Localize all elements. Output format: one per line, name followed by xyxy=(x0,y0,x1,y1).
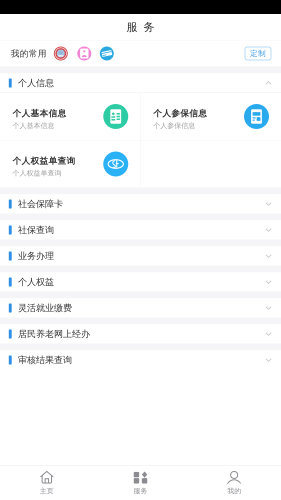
button[interactable]: 审核结果查询 xyxy=(0,350,281,369)
staticText: 我的常用 xyxy=(11,48,47,59)
staticText: 服务 xyxy=(133,487,147,495)
button[interactable]: 个人参保信息 xyxy=(68,46,91,60)
button[interactable]: 主页 xyxy=(0,466,94,500)
staticText: 个人参保信息 xyxy=(153,108,207,119)
button[interactable]: 个人权益单查询 xyxy=(0,140,140,187)
staticText: 社会保障卡 xyxy=(18,198,63,210)
button[interactable]: 社会保障卡 xyxy=(91,46,114,60)
staticText: 社保查询 xyxy=(18,224,54,236)
button[interactable]: 社保查询 xyxy=(0,220,281,239)
button[interactable]: 社会保障卡 xyxy=(0,194,281,213)
staticText: 个人基本信息 xyxy=(12,108,66,119)
button[interactable]: 定制 xyxy=(245,47,271,60)
staticText: 审核结果查询 xyxy=(18,354,72,366)
staticText: 定制 xyxy=(250,49,266,58)
button[interactable]: 个人信息 xyxy=(0,73,281,92)
staticText: 居民养老网上经办 xyxy=(18,328,90,340)
button[interactable]: 个人基本信息 xyxy=(0,93,140,140)
staticText: 个人基本信息 xyxy=(12,121,54,130)
button[interactable]: 服务 xyxy=(94,466,187,500)
staticText: 个人权益 xyxy=(18,276,54,288)
button[interactable]: 个人权益 xyxy=(0,272,281,291)
staticText: 主页 xyxy=(40,487,54,495)
staticText: 个人权益单查询 xyxy=(12,169,61,178)
staticText: 个人信息 xyxy=(18,77,54,89)
button[interactable]: 灵活就业缴费 xyxy=(0,298,281,317)
staticText: 我的 xyxy=(227,487,241,495)
button[interactable]: 我的 xyxy=(187,466,281,500)
staticText: 个人权益单查询 xyxy=(12,155,75,166)
staticText: 业务办理 xyxy=(18,250,54,262)
staticText: 灵活就业缴费 xyxy=(18,302,72,314)
staticText: 服 务 xyxy=(126,20,154,34)
button[interactable]: 电子社保卡 xyxy=(47,46,68,60)
staticText: 个人参保信息 xyxy=(153,121,195,130)
button[interactable]: 居民养老网上经办 xyxy=(0,324,281,343)
button[interactable]: 业务办理 xyxy=(0,246,281,265)
button[interactable]: 个人参保信息 xyxy=(141,93,281,140)
